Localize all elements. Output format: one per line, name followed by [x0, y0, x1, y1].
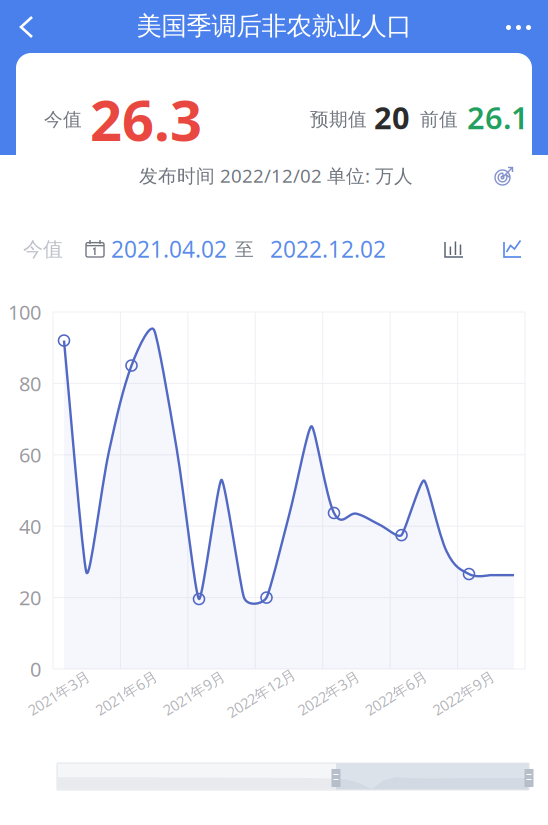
button[interactable]: Back: [0, 1, 60, 53]
staticText: 2022年12月: [222, 683, 300, 703]
staticText: 26.3: [90, 82, 202, 156]
staticText: 2021年9月: [159, 683, 229, 703]
staticText: 预期值: [310, 108, 367, 131]
staticText: 100: [8, 299, 41, 325]
staticText: 2021年3月: [24, 683, 94, 703]
staticText: 2022年3月: [294, 683, 364, 703]
staticText: 20: [19, 584, 41, 611]
staticText: 26.1: [467, 97, 529, 138]
staticText: 今值: [44, 108, 82, 131]
button[interactable]: 2021.04.02: [85, 226, 395, 272]
staticText: 2021年6月: [91, 683, 161, 703]
button[interactable]: Line chart: [490, 226, 538, 272]
staticText: 今值: [23, 237, 63, 262]
staticText: 2022年9月: [429, 683, 499, 703]
button[interactable]: More: [490, 1, 548, 53]
staticText: 2022年6月: [361, 683, 431, 703]
button[interactable]: Bar chart: [430, 226, 478, 272]
staticText: 至: [235, 238, 254, 261]
staticText: 2021.04.02: [111, 234, 227, 264]
staticText: 0: [30, 656, 41, 682]
staticText: 80: [19, 370, 41, 397]
button[interactable]: Set reminder: [484, 157, 524, 197]
staticText: 前值: [420, 108, 458, 131]
staticText: 美国季调后非农就业人口: [136, 10, 411, 41]
staticText: 2022.12.02: [270, 234, 386, 264]
staticText: 40: [19, 513, 41, 539]
staticText: 发布时间 2022/12/02 单位: 万人: [139, 163, 413, 188]
staticText: 20: [374, 97, 410, 138]
staticText: 60: [19, 441, 41, 468]
